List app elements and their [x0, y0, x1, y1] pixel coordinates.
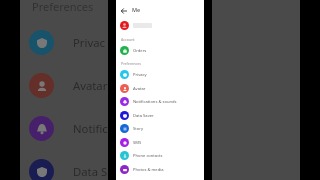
staticText: Story: [133, 126, 143, 132]
button[interactable]: Notific: [20, 112, 108, 144]
staticText: Notifications & sounds: [133, 99, 177, 105]
button[interactable]: [116, 19, 204, 31]
staticText: Notific: [73, 121, 108, 136]
button[interactable]: Avatar: [20, 69, 108, 101]
staticText: Photos & media: [133, 167, 164, 173]
staticText: Privacy: [133, 72, 147, 78]
staticText: Me: [132, 6, 141, 13]
staticText: Preferences: [121, 61, 142, 66]
button[interactable]: Phone contacts: [116, 149, 204, 162]
button[interactable]: Notifications & sounds: [116, 95, 204, 108]
button[interactable]: Privacy: [20, 26, 108, 58]
button[interactable]: Orders: [116, 44, 204, 57]
button[interactable]: Avatar: [116, 82, 204, 95]
button[interactable]: SMS: [116, 136, 204, 149]
staticText: Orders: [133, 48, 147, 54]
staticText: Data S: [73, 164, 108, 179]
button[interactable]: Back: [117, 4, 130, 17]
staticText: Preferences: [32, 0, 94, 14]
button[interactable]: Privacy: [116, 68, 204, 81]
staticText: Avatar: [133, 86, 146, 92]
staticText: Avatar: [73, 78, 108, 93]
staticText: Privacy: [73, 35, 108, 50]
staticText: Account: [121, 37, 135, 42]
button[interactable]: Story: [116, 122, 204, 135]
button[interactable]: Photos & media: [116, 163, 204, 176]
button[interactable]: Data Saver: [116, 109, 204, 122]
button[interactable]: Data S: [20, 155, 108, 180]
staticText: Data Saver: [133, 113, 154, 119]
staticText: Phone contacts: [133, 153, 163, 159]
staticText: SMS: [133, 140, 142, 146]
